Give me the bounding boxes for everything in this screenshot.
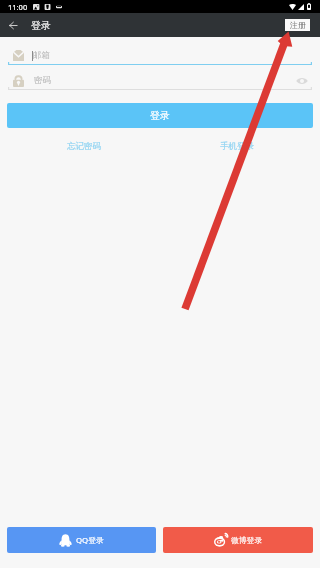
button[interactable]: QQ登录 <box>7 527 156 553</box>
staticText: 微博登录 <box>231 535 263 545</box>
staticText: 邮箱 <box>33 50 50 61</box>
button[interactable]: Toggle password visibility <box>295 74 309 88</box>
button[interactable]: Back <box>0 13 26 37</box>
staticText: 忘记密码 <box>67 141 101 152</box>
staticText: 登录 <box>31 19 51 32</box>
staticText: 手机登录 <box>220 141 254 152</box>
button[interactable]: 手机登录 <box>160 139 313 153</box>
button[interactable]: 登录 <box>7 103 313 128</box>
staticText: 登录 <box>150 109 170 122</box>
button[interactable]: 注册 <box>285 19 310 31</box>
staticText: 密码 <box>34 75 51 86</box>
staticText: QQ登录 <box>76 535 104 546</box>
button[interactable]: 微博登录 <box>163 527 313 553</box>
staticText: 11:00 <box>8 2 28 12</box>
staticText: 注册 <box>290 20 306 30</box>
button[interactable]: 忘记密码 <box>7 139 160 153</box>
